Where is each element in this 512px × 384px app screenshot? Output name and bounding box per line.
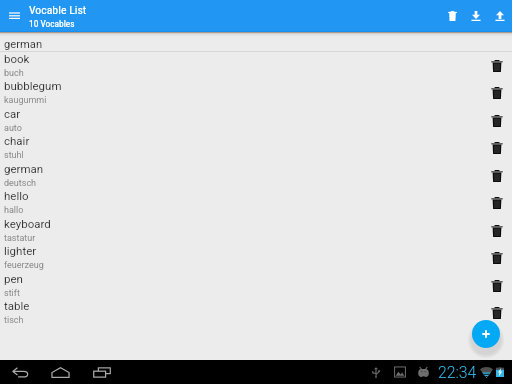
- button[interactable]: Home: [47, 360, 74, 384]
- button[interactable]: Recent apps: [89, 360, 115, 384]
- button[interactable]: Export: [488, 0, 512, 32]
- staticText: tastatur: [4, 233, 36, 244]
- button[interactable]: german: [0, 36, 512, 52]
- staticText: stift: [4, 288, 20, 299]
- button[interactable]: Delete chair: [490, 134, 503, 161]
- button[interactable]: Add vocable: [472, 320, 500, 348]
- button[interactable]: german: [0, 162, 512, 189]
- staticText: 10 Vocables: [29, 18, 75, 29]
- staticText: feuerzeug: [4, 260, 44, 271]
- button[interactable]: lighter: [0, 244, 512, 271]
- button[interactable]: Import: [464, 0, 488, 32]
- button[interactable]: book: [0, 52, 512, 79]
- button[interactable]: Delete pen: [490, 272, 503, 299]
- staticText: pen: [4, 272, 23, 285]
- staticText: kaugummi: [4, 95, 47, 106]
- button[interactable]: keyboard: [0, 217, 512, 244]
- button[interactable]: chair: [0, 134, 512, 161]
- button[interactable]: Delete table: [490, 299, 503, 326]
- staticText: hallo: [4, 205, 24, 216]
- button[interactable]: pen: [0, 272, 512, 299]
- button[interactable]: Delete bubblegum: [490, 79, 503, 106]
- staticText: bubblegum: [4, 79, 62, 92]
- staticText: chair: [4, 134, 30, 147]
- staticText: deutsch: [4, 178, 37, 189]
- button[interactable]: Delete book: [490, 52, 503, 79]
- button[interactable]: Delete german: [490, 162, 503, 189]
- staticText: car: [4, 107, 21, 120]
- staticText: Vocable List: [29, 3, 87, 17]
- staticText: keyboard: [4, 217, 51, 230]
- staticText: table: [4, 299, 30, 312]
- button[interactable]: car: [0, 107, 512, 134]
- button[interactable]: Back: [8, 360, 33, 384]
- staticText: hello: [4, 189, 29, 202]
- staticText: tisch: [4, 315, 24, 326]
- button[interactable]: Delete lighter: [490, 244, 503, 271]
- button[interactable]: Delete car: [490, 107, 503, 134]
- staticText: buch: [4, 68, 24, 79]
- staticText: lighter: [4, 244, 37, 257]
- staticText: 22:34: [438, 363, 477, 382]
- button[interactable]: Open navigation drawer: [2, 0, 26, 32]
- button[interactable]: Delete keyboard: [490, 217, 503, 244]
- staticText: book: [4, 52, 30, 65]
- staticText: german: [4, 162, 44, 175]
- button[interactable]: Delete all: [440, 0, 464, 32]
- button[interactable]: hello: [0, 189, 512, 216]
- button[interactable]: bubblegum: [0, 79, 512, 106]
- staticText: german: [4, 38, 43, 51]
- staticText: stuhl: [4, 150, 24, 161]
- staticText: auto: [4, 123, 22, 134]
- button[interactable]: Delete hello: [490, 189, 503, 216]
- button[interactable]: table: [0, 299, 512, 326]
